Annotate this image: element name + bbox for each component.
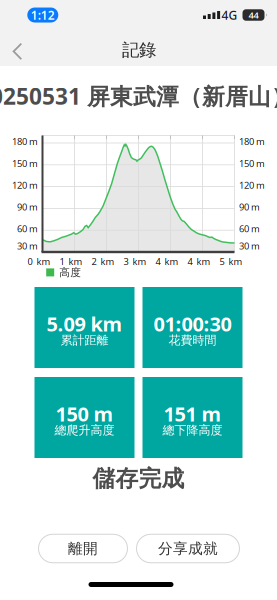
button[interactable]: 分享成就 — [136, 534, 240, 563]
staticText: 總爬升高度 — [54, 423, 114, 437]
staticText: 3 km — [123, 255, 146, 268]
staticText: 30 m — [17, 240, 38, 252]
staticText: 2 km — [91, 255, 114, 268]
staticText: 4 km — [155, 255, 178, 268]
staticText: 高度 — [59, 266, 81, 279]
staticText: 180 m — [239, 135, 265, 148]
staticText: 151 m — [163, 400, 221, 427]
staticText: 180 m — [12, 135, 38, 148]
staticText: 60 m — [239, 222, 260, 235]
staticText: 0 km — [27, 255, 50, 268]
staticText: 44 — [248, 9, 258, 21]
staticText: 60 m — [17, 222, 38, 235]
staticText: 30 m — [239, 240, 260, 252]
staticText: 1:12 — [31, 7, 55, 23]
staticText: 150 m — [55, 400, 113, 427]
staticText: 總下降高度 — [162, 423, 222, 437]
staticText: 120 m — [239, 179, 265, 191]
staticText: 0250531 屏東武潭（新厝山） — [0, 81, 277, 111]
staticText: 4G — [221, 7, 237, 23]
staticText: 1 km — [59, 255, 82, 268]
staticText: 分享成就 — [158, 539, 218, 557]
staticText: 花費時間 — [168, 333, 216, 347]
staticText: 5 km — [219, 255, 242, 268]
staticText: 90 m — [239, 201, 260, 213]
staticText: 150 m — [239, 157, 265, 169]
staticText: 離開 — [68, 539, 98, 557]
staticText: 4 km — [187, 255, 210, 268]
staticText: 01:00:30 — [153, 310, 231, 337]
button[interactable]: Back — [9, 42, 27, 60]
staticText: 累計距離 — [60, 333, 108, 347]
staticText: 記錄 — [122, 39, 156, 61]
staticText: 150 m — [12, 157, 38, 169]
staticText: 5.09 km — [46, 310, 122, 337]
button[interactable]: 離開 — [38, 534, 128, 563]
staticText: 儲存完成 — [92, 465, 184, 493]
staticText: 120 m — [12, 179, 38, 191]
staticText: 90 m — [17, 201, 38, 213]
